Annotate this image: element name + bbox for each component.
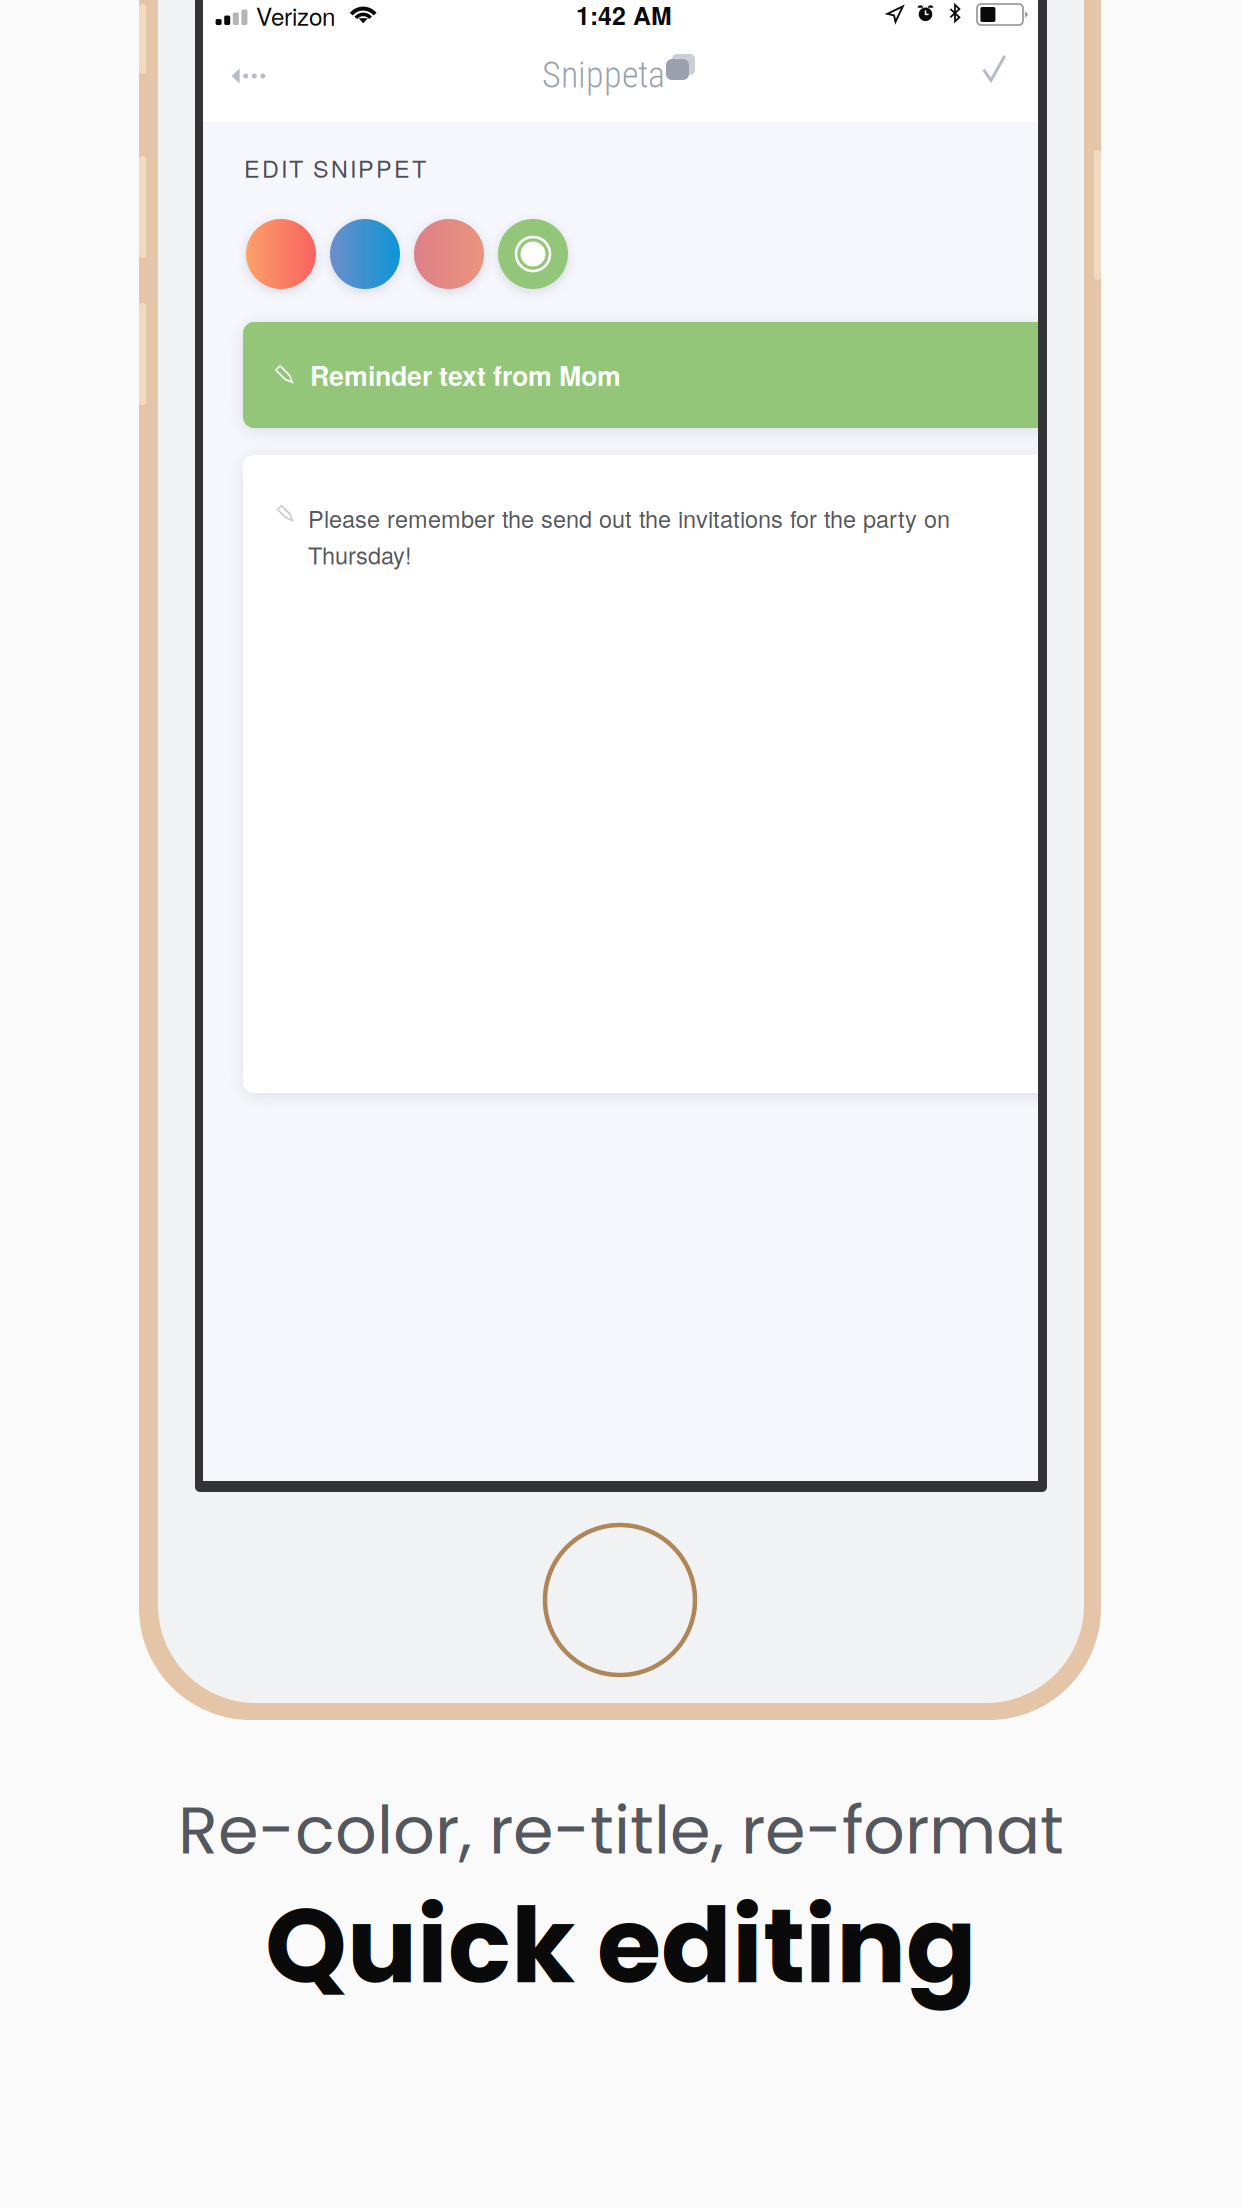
button[interactable]: Please remember the send out the invitat… [243,455,1073,1093]
staticText: Snippeta [542,54,665,96]
staticText: Reminder text from Mom [310,356,621,394]
button[interactable]: Reminder text from Mom [243,322,1073,428]
staticText: Verizon [256,0,335,33]
button[interactable]: Orange [239,212,323,296]
button[interactable]: Pink [407,212,491,296]
button[interactable]: Blue [323,212,407,296]
staticText: Quick editing [265,1873,977,2019]
button[interactable]: Save [943,42,1038,94]
staticText: 1:42 AM [576,0,672,32]
staticText: Please remember the send out the invitat… [308,501,950,571]
staticText: EDIT SNIPPET [244,151,426,184]
button[interactable]: Back [203,42,299,110]
staticText: Re-color, re-title, re-format [178,1785,1064,1876]
button[interactable]: Green, selected [491,212,575,296]
